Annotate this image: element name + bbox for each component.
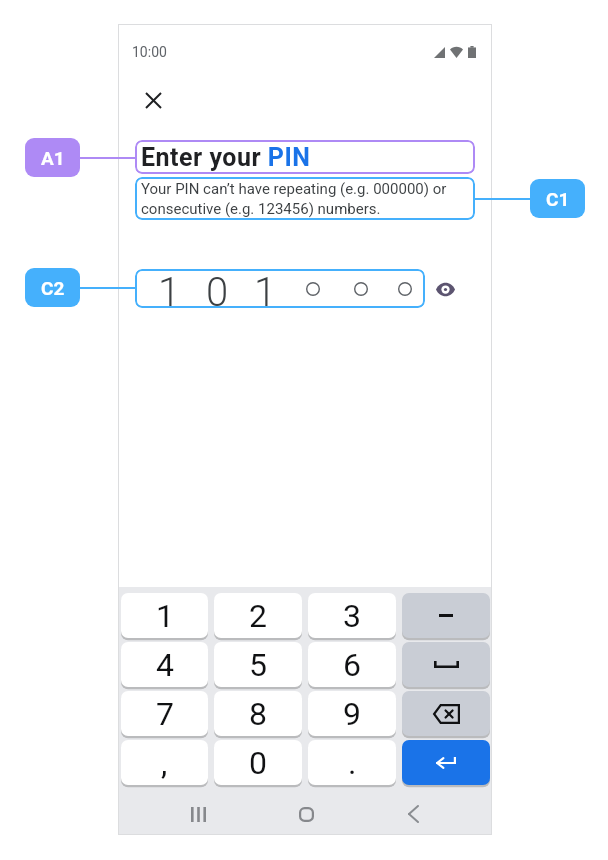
button[interactable]: C2 [25, 268, 80, 307]
staticText: 8 [249, 695, 267, 733]
button[interactable]: 5 [214, 642, 302, 687]
staticText: 2 [249, 597, 267, 635]
button[interactable]: C1 [530, 179, 585, 218]
button[interactable]: Dash [402, 593, 490, 638]
button[interactable]: A1 [25, 138, 80, 177]
staticText: Enter your PIN [141, 143, 311, 172]
button[interactable]: 2 [214, 593, 302, 638]
staticText: C1 [546, 188, 570, 210]
staticText: 10:00 [132, 44, 167, 60]
staticText: . [348, 744, 357, 782]
button[interactable]: . [308, 740, 396, 785]
button[interactable]: , [121, 740, 208, 785]
staticText: A1 [41, 147, 65, 169]
button[interactable]: Show PIN [432, 276, 458, 302]
staticText: 1 [254, 269, 277, 308]
staticText: 6 [343, 646, 361, 684]
staticText: 3 [343, 597, 361, 635]
button[interactable]: Enter [402, 740, 490, 785]
button[interactable]: 6 [308, 642, 396, 687]
button[interactable]: 9 [308, 691, 396, 736]
button[interactable]: Recents [178, 794, 218, 834]
staticText: , [161, 744, 168, 782]
staticText: 0 [249, 744, 267, 782]
button[interactable]: 4 [121, 642, 208, 687]
button[interactable]: Backspace [402, 691, 490, 736]
staticText: 1 [158, 269, 181, 308]
staticText: Your PIN can’t have repeating (e.g. 0000… [141, 180, 471, 218]
staticText: C2 [41, 277, 65, 299]
button[interactable]: Space [402, 642, 490, 687]
staticText: 4 [156, 646, 174, 684]
staticText: 0 [206, 269, 229, 308]
staticText: 9 [343, 695, 361, 733]
button[interactable]: Back [393, 794, 433, 834]
button[interactable]: Close [133, 80, 173, 120]
button[interactable]: Home [286, 794, 326, 834]
staticText: 5 [249, 646, 267, 684]
button[interactable]: 0 [214, 740, 302, 785]
staticText: 1 [156, 597, 174, 635]
button[interactable]: 1 [121, 593, 208, 638]
staticText: 7 [156, 695, 174, 733]
button[interactable]: 3 [308, 593, 396, 638]
button[interactable]: 8 [214, 691, 302, 736]
button[interactable]: 7 [121, 691, 208, 736]
